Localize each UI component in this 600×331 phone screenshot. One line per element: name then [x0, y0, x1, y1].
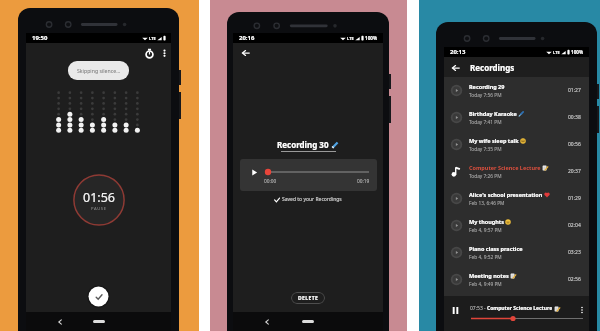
- staticText: 01:56: [83, 189, 115, 206]
- button[interactable]: Birthday Karaoke: [444, 104, 589, 131]
- staticText: Feb 4, 9:52 PM: [469, 254, 502, 261]
- staticText: 01:27: [568, 87, 581, 94]
- button[interactable]: Meeting notes: [444, 266, 589, 293]
- staticText: 20:37: [568, 168, 581, 175]
- staticText: LTE: [553, 50, 560, 55]
- staticText: Recording 30: [277, 139, 329, 150]
- staticText: Feb 4, 9:49 PM: [469, 281, 502, 288]
- staticText: DELETE: [298, 295, 319, 302]
- staticText: PAUSE: [91, 206, 107, 212]
- button[interactable]: More options: [157, 46, 171, 60]
- staticText: Recording 29: [469, 83, 505, 90]
- button[interactable]: My thoughts: [444, 212, 589, 239]
- button[interactable]: Skipping silence...: [68, 61, 129, 80]
- staticText: Feb 13, 6:46 PM: [469, 200, 505, 207]
- button[interactable]: Home: [302, 320, 314, 323]
- button[interactable]: More options: [578, 306, 586, 314]
- staticText: 02:56: [568, 276, 581, 283]
- staticText: Today 7:35 PM: [469, 146, 502, 153]
- staticText: 19:50: [32, 34, 48, 42]
- staticText: Recordings: [470, 62, 515, 73]
- staticText: 00:38: [568, 114, 581, 121]
- staticText: Skipping silence...: [77, 67, 121, 74]
- staticText: 00:00: [264, 178, 277, 185]
- staticText: 07:53 -: [470, 305, 487, 312]
- button[interactable]: Alice's school presentation: [444, 185, 589, 212]
- button[interactable]: Back: [261, 316, 272, 327]
- staticText: Saved to your Recordings: [282, 196, 342, 203]
- button[interactable]: Play: [251, 169, 258, 176]
- staticText: Piano class practice: [469, 245, 523, 252]
- button[interactable]: Save recording: [86, 284, 111, 309]
- staticText: Birthday Karaoke: [469, 110, 517, 117]
- button[interactable]: Home: [93, 320, 105, 323]
- other: Rename: [331, 141, 339, 149]
- staticText: Meeting notes: [469, 272, 509, 279]
- staticText: 03:23: [568, 249, 581, 256]
- staticText: Today 7:26 PM: [469, 173, 502, 180]
- staticText: LTE: [149, 36, 156, 41]
- button[interactable]: Recording 29: [444, 77, 589, 104]
- button[interactable]: Computer Science Lecture: [444, 158, 589, 185]
- button[interactable]: Back: [449, 61, 462, 74]
- button[interactable]: Back: [239, 46, 253, 60]
- staticText: Today 7:56 PM: [469, 92, 502, 99]
- button[interactable]: My wife sleep talk: [444, 131, 589, 158]
- button[interactable]: Back: [54, 316, 65, 327]
- button[interactable]: Auto stop timer: [142, 46, 156, 60]
- staticText: My wife sleep talk: [469, 137, 519, 144]
- staticText: Alice's school presentation: [469, 191, 543, 198]
- staticText: 02:04: [568, 222, 581, 229]
- staticText: LTE: [347, 36, 354, 41]
- staticText: Today 7:41 PM: [469, 119, 502, 126]
- button[interactable]: Pause: [452, 307, 459, 314]
- staticText: 00:56: [568, 141, 581, 148]
- staticText: 100%: [365, 35, 378, 41]
- staticText: 00:19: [357, 178, 370, 185]
- button[interactable]: 01:56: [73, 174, 125, 226]
- staticText: Computer Science Lecture: [469, 164, 541, 171]
- staticText: 20:13: [450, 48, 466, 56]
- button[interactable]: DELETE: [291, 292, 325, 304]
- staticText: Computer Science Lecture: [487, 305, 553, 312]
- staticText: 20:16: [239, 34, 255, 42]
- staticText: My thoughts: [469, 218, 504, 225]
- staticText: Feb 4, 9:57 PM: [469, 227, 502, 234]
- staticText: 100%: [571, 49, 584, 55]
- staticText: 01:29: [568, 195, 581, 202]
- button[interactable]: Piano class practice: [444, 239, 589, 266]
